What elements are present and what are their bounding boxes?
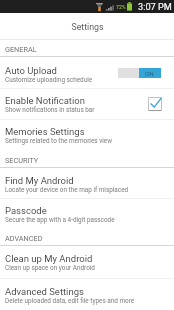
button[interactable]: Auto Upload switch, on bbox=[118, 68, 161, 78]
button[interactable]: Enable Notification bbox=[0, 88, 174, 119]
staticText: Enable Notification bbox=[5, 95, 85, 106]
button[interactable]: Passcode bbox=[0, 198, 174, 229]
staticText: Clean up space on your Android bbox=[5, 264, 95, 272]
staticText: Clean up My Android bbox=[5, 253, 93, 264]
staticText: Delete uploaded data, edit file types an… bbox=[5, 297, 135, 305]
staticText: ON bbox=[145, 70, 154, 77]
button[interactable]: Auto Upload bbox=[0, 57, 174, 89]
staticText: 72% bbox=[116, 4, 126, 10]
staticText: Locate your device on the map if misplac… bbox=[5, 186, 129, 194]
button[interactable]: Find My Android bbox=[0, 168, 174, 198]
button[interactable]: Advanced Settings bbox=[0, 278, 174, 310]
button[interactable]: Enable Notification checkbox, checked bbox=[146, 95, 163, 113]
staticText: Memories Settings bbox=[5, 126, 85, 137]
staticText: Find My Android bbox=[5, 175, 74, 186]
staticText: Show notifications in status bar bbox=[5, 106, 95, 114]
staticText: Advanced Settings bbox=[5, 286, 84, 297]
staticText: Passcode bbox=[5, 205, 47, 216]
staticText: Secure the app with a 4-digit passcode bbox=[5, 216, 115, 224]
button[interactable]: Memories Settings bbox=[0, 119, 174, 150]
staticText: Settings related to the memories view bbox=[5, 137, 113, 145]
staticText: Auto Upload bbox=[5, 65, 57, 76]
staticText: ADVANCED bbox=[5, 234, 43, 243]
staticText: Customize uploading schedule bbox=[5, 76, 93, 84]
staticText: Settings bbox=[71, 22, 104, 32]
staticText: GENERAL bbox=[5, 45, 37, 54]
staticText: SECURITY bbox=[5, 156, 39, 165]
button[interactable]: Clean up My Android bbox=[0, 246, 174, 277]
staticText: 3:07 PM bbox=[138, 1, 172, 12]
